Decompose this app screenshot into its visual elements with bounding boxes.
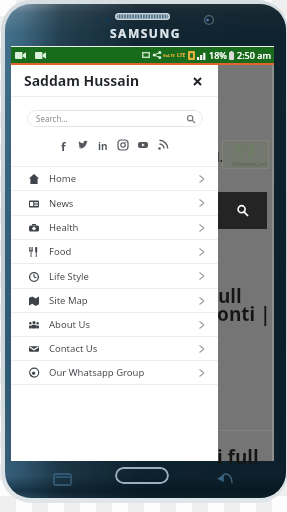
- staticText: Search...: [36, 113, 68, 124]
- button[interactable]: Contact Us: [11, 337, 218, 360]
- button[interactable]: Home: [115, 467, 169, 484]
- button[interactable]: Recent apps: [53, 469, 72, 489]
- staticText: Life Style: [49, 270, 89, 283]
- button[interactable]: RSS feed: [157, 139, 169, 151]
- staticText: About Us: [49, 318, 90, 331]
- staticText: Contact Us: [49, 342, 98, 355]
- staticText: LTE: [177, 52, 186, 59]
- button[interactable]: Search...: [27, 110, 203, 127]
- button[interactable]: Twitter: [77, 139, 89, 151]
- button[interactable]: Life Style: [11, 264, 218, 288]
- staticText: l.: [216, 149, 223, 165]
- button[interactable]: Back: [215, 469, 234, 489]
- button[interactable]: Our Whatsapp Group: [11, 361, 218, 384]
- staticText: in: [98, 139, 108, 151]
- staticText: ull: [218, 283, 242, 309]
- button[interactable]: Instagram: [117, 139, 129, 151]
- staticText: Our Whatsapp Group: [49, 366, 145, 379]
- staticText: Food: [49, 245, 72, 258]
- button[interactable]: News: [11, 191, 218, 215]
- staticText: WomanCare: [232, 160, 269, 168]
- button[interactable]: Facebook: [57, 139, 69, 151]
- staticText: Health: [49, 221, 79, 234]
- staticText: SAMSUNG: [110, 25, 181, 41]
- staticText: f: [61, 139, 66, 151]
- staticText: VoLTE: [163, 53, 175, 58]
- button[interactable]: Food: [11, 240, 218, 263]
- button[interactable]: Home: [11, 167, 218, 190]
- staticText: Site Map: [49, 294, 88, 307]
- button[interactable]: YouTube: [137, 139, 149, 151]
- staticText: Home: [49, 172, 77, 185]
- staticText: News: [49, 197, 74, 210]
- button[interactable]: Saddam Hussain: [11, 65, 218, 96]
- button[interactable]: About Us: [11, 313, 218, 336]
- staticText: 18%: [209, 49, 227, 61]
- button[interactable]: Health: [11, 216, 218, 239]
- staticText: Saddam Hussain: [24, 71, 140, 90]
- staticText: onti |: [217, 301, 271, 327]
- staticText: i full: [217, 444, 259, 470]
- button[interactable]: LinkedIn: [97, 139, 109, 151]
- button[interactable]: Close menu: [187, 71, 207, 91]
- button[interactable]: Site Map: [11, 289, 218, 312]
- staticText: 2:50 am: [237, 49, 271, 61]
